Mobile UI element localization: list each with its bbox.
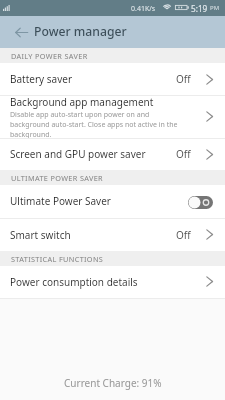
- staticText: STATISTICAL FUNCTIONS: [11, 254, 104, 264]
- button[interactable]: Screen and GPU power saver: [0, 138, 225, 170]
- staticText: 0.41K/s: [131, 4, 156, 14]
- staticText: Screen and GPU power saver: [10, 147, 146, 161]
- staticText: Power consumption details: [10, 275, 138, 289]
- button[interactable]: Background app management: [0, 95, 225, 138]
- button[interactable]: Ultimate Power Saver: [0, 184, 225, 218]
- staticText: Ultimate Power Saver: [10, 194, 188, 208]
- staticText: PM: [210, 4, 220, 12]
- staticText: Disable app auto-start upon power on and…: [10, 110, 187, 138]
- staticText: Smart switch: [10, 228, 71, 242]
- staticText: Off: [176, 147, 191, 161]
- staticText: 5:19: [191, 3, 208, 14]
- button[interactable]: Back: [7, 18, 35, 46]
- staticText: DAILY POWER SAVER: [11, 51, 88, 61]
- staticText: Battery saver: [10, 72, 73, 86]
- staticText: Current Charge: 91%: [64, 376, 162, 390]
- staticText: Power manager: [34, 23, 127, 40]
- button[interactable]: Smart switch: [0, 218, 225, 251]
- staticText: ULTIMATE POWER SAVER: [11, 173, 103, 183]
- staticText: Off: [176, 228, 191, 242]
- button[interactable]: Power consumption details: [0, 265, 225, 298]
- staticText: Background app management: [10, 95, 154, 109]
- button[interactable]: Battery saver: [0, 63, 225, 95]
- staticText: Off: [176, 72, 191, 86]
